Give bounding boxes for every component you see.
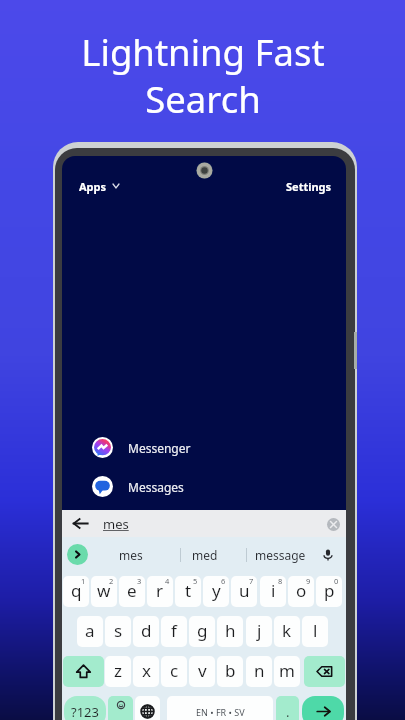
staticText: 2 xyxy=(109,576,114,586)
staticText: w xyxy=(97,579,111,602)
button[interactable]: r xyxy=(147,576,173,607)
staticText: j xyxy=(257,619,262,642)
staticText: o xyxy=(296,579,307,602)
button[interactable]: l xyxy=(302,616,328,647)
staticText: n xyxy=(254,659,265,682)
button[interactable]: e xyxy=(119,576,145,607)
button[interactable]: Messages xyxy=(62,467,346,506)
staticText: p xyxy=(324,579,335,602)
button[interactable]: n xyxy=(246,656,272,687)
button[interactable]: Settings xyxy=(286,177,332,195)
staticText: EN • FR • SV xyxy=(196,706,245,718)
button[interactable]: a xyxy=(77,616,103,647)
staticText: h xyxy=(225,619,236,642)
staticText: x xyxy=(142,659,151,682)
button[interactable]: message xyxy=(247,537,313,573)
staticText: e xyxy=(127,579,137,602)
staticText: 0 xyxy=(334,576,339,586)
staticText: med xyxy=(192,547,218,563)
button[interactable]: Backspace xyxy=(304,656,345,687)
button[interactable]: o xyxy=(288,576,314,607)
button[interactable]: i xyxy=(260,576,286,607)
staticText: 1 xyxy=(81,576,86,586)
staticText: Lightning Fast Search xyxy=(81,27,325,124)
button[interactable]: x xyxy=(133,656,159,687)
button[interactable]: Change language xyxy=(135,696,160,720)
staticText: 7 xyxy=(249,576,254,586)
button[interactable]: Clear xyxy=(323,514,343,534)
button[interactable]: q xyxy=(63,576,89,607)
button[interactable]: s xyxy=(105,616,131,647)
button[interactable]: mes xyxy=(103,515,129,533)
staticText: t xyxy=(185,579,192,602)
button[interactable]: Back xyxy=(67,510,94,537)
button[interactable]: m xyxy=(274,656,300,687)
staticText: message xyxy=(255,547,306,563)
button[interactable]: b xyxy=(217,656,243,687)
button[interactable]: k xyxy=(274,616,300,647)
staticText: . xyxy=(286,703,290,720)
staticText: u xyxy=(239,579,250,602)
staticText: f xyxy=(171,619,177,642)
button[interactable]: ?123 xyxy=(64,696,106,720)
staticText: r xyxy=(156,579,164,602)
button[interactable]: z xyxy=(105,656,131,687)
staticText: z xyxy=(114,659,122,682)
button[interactable]: Apps xyxy=(79,177,119,195)
staticText: y xyxy=(212,579,221,602)
button[interactable]: Emoji xyxy=(108,696,133,720)
button[interactable]: v xyxy=(189,656,215,687)
staticText: g xyxy=(197,619,208,642)
button[interactable]: Messenger xyxy=(62,428,346,467)
staticText: l xyxy=(313,619,318,642)
staticText: Messages xyxy=(128,479,184,495)
button[interactable]: j xyxy=(246,616,272,647)
button[interactable]: c xyxy=(161,656,187,687)
button[interactable]: y xyxy=(203,576,229,607)
staticText: m xyxy=(279,659,295,682)
staticText: s xyxy=(114,619,123,642)
button[interactable]: med xyxy=(172,537,238,573)
staticText: Settings xyxy=(286,179,332,194)
staticText: Apps xyxy=(79,179,107,194)
staticText: , xyxy=(119,708,123,720)
button[interactable]: d xyxy=(133,616,159,647)
button[interactable]: Enter xyxy=(302,696,344,720)
staticText: 3 xyxy=(137,576,142,586)
button[interactable]: u xyxy=(231,576,257,607)
staticText: d xyxy=(141,619,152,642)
button[interactable]: w xyxy=(91,576,117,607)
button[interactable]: Expand suggestions xyxy=(67,544,88,565)
button[interactable]: EN • FR • SV xyxy=(167,696,273,720)
staticText: 4 xyxy=(165,576,170,586)
button[interactable]: f xyxy=(161,616,187,647)
staticText: k xyxy=(282,619,292,642)
staticText: 5 xyxy=(193,576,198,586)
button[interactable]: g xyxy=(189,616,215,647)
staticText: b xyxy=(225,659,236,682)
staticText: 9 xyxy=(306,576,311,586)
button[interactable]: t xyxy=(175,576,201,607)
button[interactable]: mes xyxy=(98,537,164,573)
button[interactable]: Voice input xyxy=(317,544,338,565)
staticText: a xyxy=(85,619,95,642)
staticText: mes xyxy=(119,547,143,563)
button[interactable]: h xyxy=(217,616,243,647)
staticText: c xyxy=(170,659,179,682)
staticText: 6 xyxy=(221,576,226,586)
staticText: q xyxy=(71,579,82,602)
button[interactable]: Shift xyxy=(63,656,104,687)
staticText: Messenger xyxy=(128,440,191,456)
staticText: 8 xyxy=(278,576,283,586)
button[interactable]: p xyxy=(316,576,342,607)
button[interactable]: . xyxy=(276,696,299,720)
staticText: v xyxy=(198,659,207,682)
staticText: i xyxy=(271,579,276,602)
staticText: ?123 xyxy=(71,703,99,720)
